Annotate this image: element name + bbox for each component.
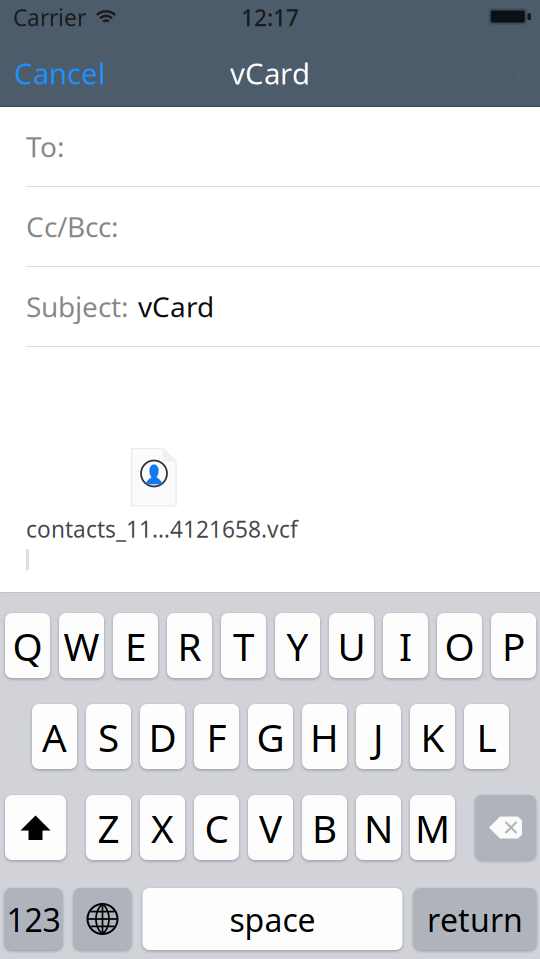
button[interactable]: space (142, 888, 402, 950)
staticText: V (259, 802, 282, 854)
button[interactable]: E (113, 613, 158, 678)
staticText: Cc/Bcc: (26, 208, 119, 245)
button[interactable]: A (32, 704, 77, 769)
button[interactable]: M (410, 795, 455, 860)
staticText: J (373, 711, 384, 763)
button[interactable]: Shift (5, 795, 66, 860)
staticText: Y (286, 620, 308, 672)
button[interactable]: U (329, 613, 374, 678)
staticText: A (42, 711, 67, 763)
staticText: L (476, 711, 496, 763)
button[interactable]: L (464, 704, 509, 769)
staticText: Cancel (14, 53, 106, 92)
button[interactable]: Y (275, 613, 320, 678)
staticText: T (233, 620, 254, 672)
button[interactable]: S (86, 704, 131, 769)
staticText: G (256, 711, 284, 763)
button[interactable]: R (167, 613, 212, 678)
button[interactable]: Cancel (0, 45, 120, 107)
button[interactable]: P (491, 613, 536, 678)
staticText: O (444, 620, 474, 672)
button[interactable]: X (140, 795, 185, 860)
staticText: N (364, 802, 393, 854)
staticText: H (310, 711, 339, 763)
staticText: return (427, 898, 523, 941)
staticText: Q (12, 620, 42, 672)
staticText: E (125, 620, 146, 672)
staticText: To: (26, 128, 65, 165)
staticText: contacts_11…4121658.vcf (26, 514, 298, 544)
staticText: vCard (230, 53, 310, 92)
button[interactable]: Next keyboard (73, 888, 131, 950)
staticText: Carrier (13, 2, 86, 32)
button[interactable]: O (437, 613, 482, 678)
staticText: M (415, 802, 450, 854)
button[interactable]: D (140, 704, 185, 769)
button[interactable]: B (302, 795, 347, 860)
staticText: X (151, 802, 174, 854)
staticText: W (63, 620, 99, 672)
button[interactable]: Q (5, 613, 50, 678)
button[interactable]: H (302, 704, 347, 769)
staticText: K (420, 711, 444, 763)
button[interactable]: G (248, 704, 293, 769)
staticText: I (399, 620, 412, 672)
staticText: C (204, 802, 228, 854)
button[interactable]: K (410, 704, 455, 769)
staticText: D (148, 711, 176, 763)
staticText: vCard (138, 288, 214, 325)
button[interactable]: V (248, 795, 293, 860)
button[interactable]: Delete (475, 795, 536, 860)
button[interactable]: I (383, 613, 428, 678)
button[interactable]: return (413, 888, 536, 950)
button[interactable]: Z (86, 795, 131, 860)
button[interactable]: C (194, 795, 239, 860)
staticText: B (312, 802, 337, 854)
button[interactable]: W (59, 613, 104, 678)
staticText: Subject: (26, 288, 129, 325)
staticText: S (98, 711, 119, 763)
button[interactable]: T (221, 613, 266, 678)
button[interactable]: N (356, 795, 401, 860)
button[interactable]: F (194, 704, 239, 769)
staticText: 123 (6, 898, 60, 941)
staticText: P (502, 620, 525, 672)
staticText: 12:17 (241, 2, 299, 32)
staticText: F (206, 711, 226, 763)
staticText: U (337, 620, 365, 672)
button[interactable]: 123 (4, 888, 62, 950)
button[interactable]: J (356, 704, 401, 769)
staticText: space (229, 898, 315, 941)
staticText: R (177, 620, 201, 672)
staticText: Z (97, 802, 119, 854)
